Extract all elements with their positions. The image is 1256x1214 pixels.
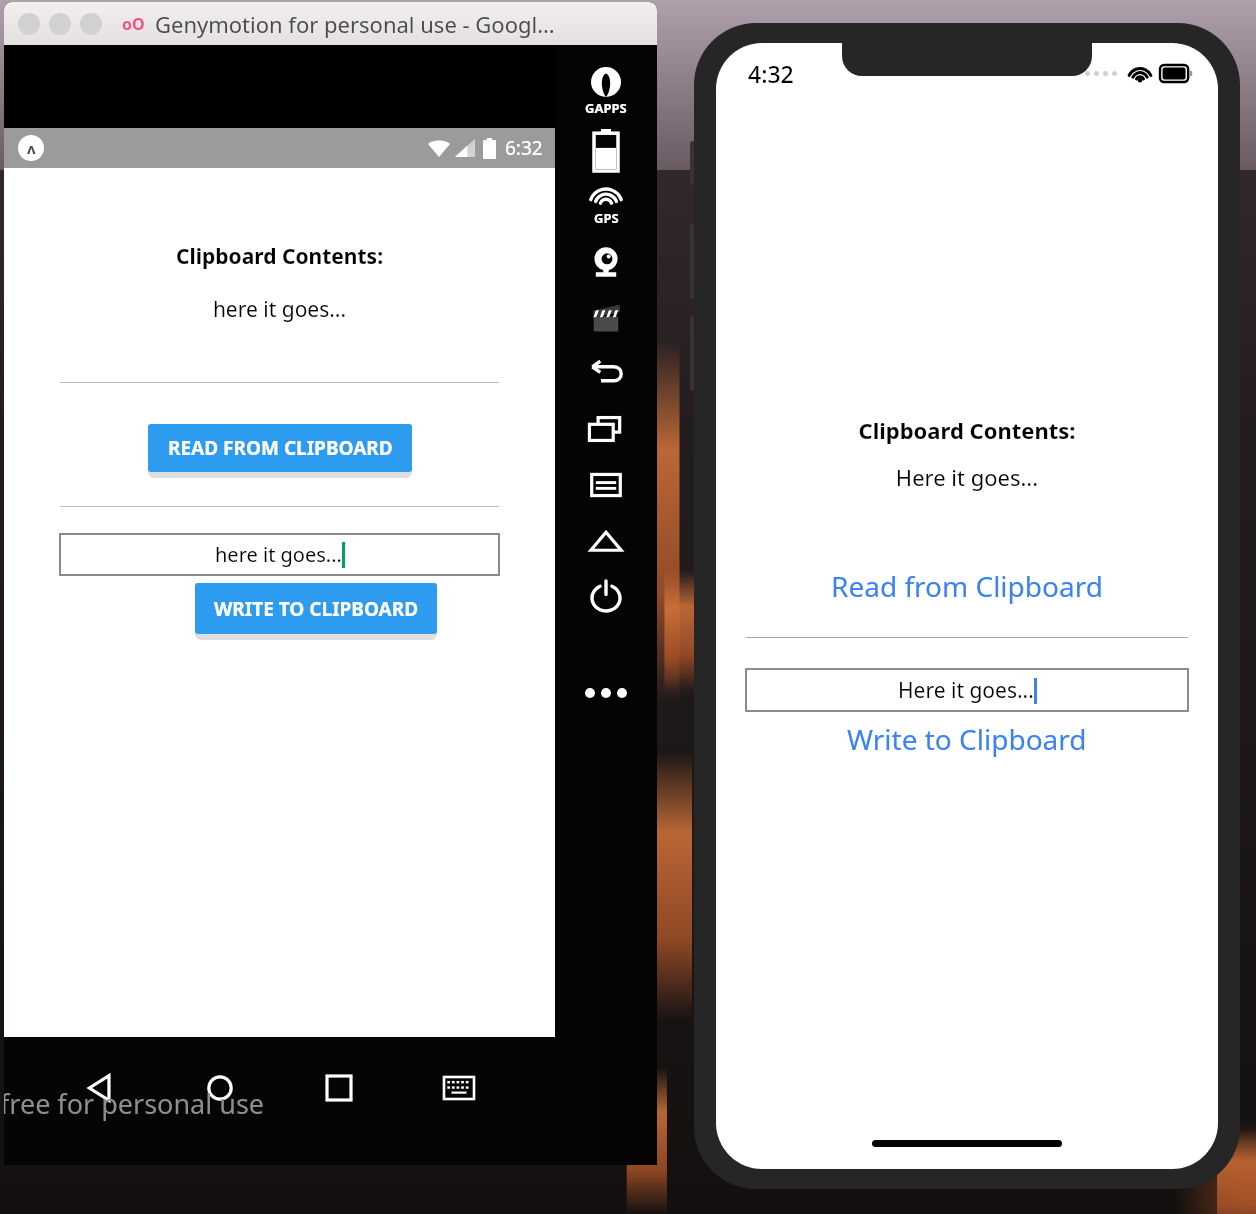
button[interactable]: WRITE TO CLIPBOARD: [195, 583, 437, 634]
button[interactable]: Emulator control: [569, 457, 643, 513]
button[interactable]: Keyboard: [436, 1065, 482, 1111]
button[interactable]: Back: [77, 1065, 123, 1111]
staticText: Here it goes...: [716, 462, 1218, 492]
staticText: Genymotion for personal use - Googl…: [155, 9, 555, 39]
staticText: READ FROM CLIPBOARD: [168, 435, 393, 461]
button[interactable]: [49, 13, 71, 35]
button[interactable]: Here it goes...: [746, 669, 1188, 711]
button[interactable]: READ FROM CLIPBOARD: [148, 424, 412, 472]
staticText: oO: [122, 13, 145, 35]
button[interactable]: Home: [197, 1065, 243, 1111]
staticText: WRITE TO CLIPBOARD: [214, 596, 419, 622]
button[interactable]: Recents: [316, 1065, 362, 1111]
button[interactable]: Emulator control: [569, 401, 643, 457]
staticText: 4:32: [748, 58, 794, 89]
button[interactable]: Emulator control: [569, 121, 643, 179]
button[interactable]: Emulator control: [569, 345, 643, 401]
staticText: ʌ: [27, 138, 36, 158]
button[interactable]: Write to Clipboard: [716, 717, 1218, 761]
staticText: Clipboard Contents:: [4, 242, 555, 271]
staticText: GPS: [594, 209, 619, 227]
button[interactable]: here it goes...: [60, 534, 499, 575]
staticText: 6:32: [505, 135, 543, 161]
button[interactable]: GPS: [569, 179, 643, 233]
staticText: GAPPS: [585, 99, 627, 117]
staticText: here it goes...: [215, 541, 342, 568]
staticText: Write to Clipboard: [847, 720, 1087, 758]
staticText: Here it goes...: [898, 676, 1034, 705]
button[interactable]: Read from Clipboard: [716, 564, 1218, 608]
button[interactable]: [18, 13, 40, 35]
button[interactable]: [80, 13, 102, 35]
button[interactable]: Emulator control: [569, 233, 643, 291]
staticText: here it goes...: [4, 295, 555, 324]
button[interactable]: Emulator control: [569, 569, 643, 625]
staticText: free for personal use: [4, 1085, 265, 1122]
button[interactable]: Emulator control: [569, 513, 643, 569]
button[interactable]: Emulator control: [569, 291, 643, 345]
staticText: Read from Clipboard: [831, 567, 1103, 605]
staticText: Clipboard Contents:: [716, 415, 1218, 445]
button[interactable]: More options: [578, 665, 634, 721]
button[interactable]: GAPPS: [569, 63, 643, 121]
